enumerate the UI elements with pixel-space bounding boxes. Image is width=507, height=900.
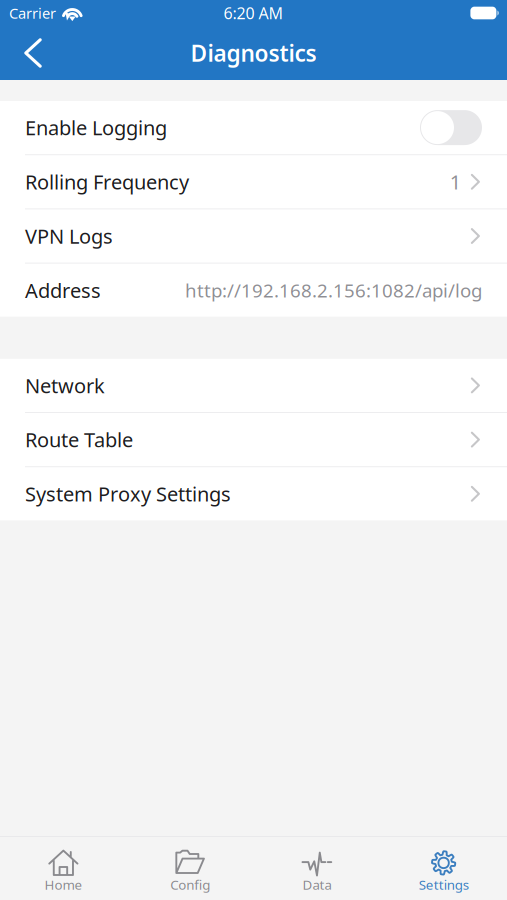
button[interactable]: Route Table — [0, 413, 507, 466]
staticText: Settings — [419, 876, 469, 893]
staticText: http://192.168.2.156:1082/api/log — [185, 278, 482, 303]
button[interactable]: Network — [0, 359, 507, 412]
staticText: Enable Logging — [25, 114, 167, 141]
button[interactable]: Settings — [380, 837, 507, 900]
button[interactable]: VPN Logs — [0, 209, 507, 263]
staticText: Carrier — [9, 3, 56, 23]
button[interactable]: Data — [253, 837, 380, 900]
staticText: System Proxy Settings — [25, 480, 231, 507]
button[interactable]: System Proxy Settings — [0, 467, 507, 520]
button[interactable]: Config — [127, 837, 254, 900]
button[interactable]: Rolling Frequency — [0, 155, 507, 208]
staticText: Config — [170, 876, 210, 893]
button[interactable]: Home — [0, 837, 127, 900]
staticText: 1 — [450, 168, 461, 195]
staticText: Data — [302, 876, 331, 893]
staticText: Network — [25, 372, 105, 399]
staticText: Address — [25, 277, 101, 303]
staticText: VPN Logs — [25, 223, 113, 249]
staticText: Diagnostics — [190, 38, 316, 68]
button[interactable]: Back — [0, 26, 60, 80]
staticText: Route Table — [25, 426, 133, 453]
staticText: Home — [44, 876, 82, 893]
staticText: 6:20 AM — [223, 2, 283, 24]
button[interactable]: Enable Logging — [0, 101, 507, 154]
staticText: Rolling Frequency — [25, 168, 189, 195]
button[interactable]: Address — [0, 264, 507, 317]
